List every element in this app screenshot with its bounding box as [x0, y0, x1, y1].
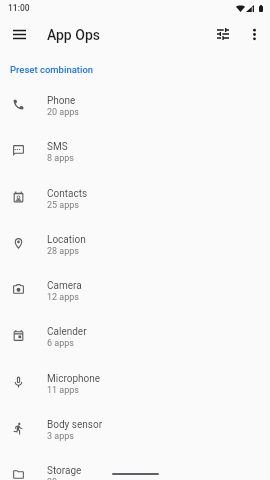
staticText: Body sensor: [47, 419, 103, 431]
staticText: 30 apps: [47, 477, 79, 480]
staticText: Calender: [47, 326, 87, 338]
staticText: 20 apps: [47, 107, 79, 118]
staticText: 11 apps: [47, 385, 79, 396]
staticText: Preset combination: [10, 64, 94, 75]
button[interactable]: Calender: [0, 315, 270, 361]
button[interactable]: Microphone: [0, 362, 270, 408]
staticText: 3 apps: [47, 431, 74, 442]
staticText: Camera: [47, 280, 82, 292]
staticText: Microphone: [47, 373, 101, 385]
staticText: App Ops: [47, 27, 101, 43]
staticText: Contacts: [47, 188, 88, 200]
button[interactable]: SMS: [0, 130, 270, 176]
button[interactable]: Location: [0, 223, 270, 269]
staticText: Location: [47, 234, 86, 246]
button[interactable]: Camera: [0, 269, 270, 315]
staticText: SMS: [47, 141, 68, 153]
button[interactable]: Preset combination: [0, 58, 270, 79]
staticText: 25 apps: [47, 200, 79, 211]
button[interactable]: Navigation menu: [4, 19, 34, 49]
staticText: Storage: [47, 465, 82, 477]
button[interactable]: Phone: [0, 84, 270, 130]
button[interactable]: Storage: [0, 454, 270, 480]
button[interactable]: Body sensor: [0, 408, 270, 454]
staticText: 6 apps: [47, 338, 74, 349]
staticText: 8 apps: [47, 153, 74, 164]
staticText: Phone: [47, 95, 76, 107]
staticText: 28 apps: [47, 246, 79, 257]
button[interactable]: Filter: [209, 20, 237, 48]
staticText: 12 apps: [47, 292, 79, 303]
staticText: 11:00: [8, 3, 30, 13]
button[interactable]: Contacts: [0, 177, 270, 223]
button[interactable]: More options: [240, 20, 268, 48]
